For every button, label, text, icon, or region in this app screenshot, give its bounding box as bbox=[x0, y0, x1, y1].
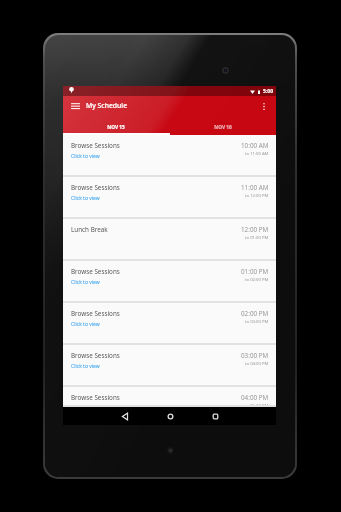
staticText: Lunch Break bbox=[71, 225, 108, 234]
button[interactable]: NOV 15 bbox=[63, 119, 169, 135]
button[interactable]: Browse Sessions bbox=[63, 135, 276, 177]
staticText: 10:00 AM bbox=[241, 141, 269, 150]
staticText: My Schedule bbox=[86, 101, 128, 110]
button[interactable]: Home bbox=[161, 407, 179, 425]
button[interactable]: More options bbox=[257, 99, 271, 113]
staticText: 02:00 PM bbox=[241, 309, 269, 318]
staticText: Click to view bbox=[71, 321, 100, 328]
staticText: Browse Sessions bbox=[71, 393, 120, 402]
staticText: to 01:00 PM bbox=[245, 235, 269, 241]
staticText: Click to view bbox=[71, 153, 100, 160]
staticText: Browse Sessions bbox=[71, 267, 120, 276]
button[interactable]: Browse Sessions bbox=[63, 261, 276, 303]
button[interactable]: Browse Sessions bbox=[63, 303, 276, 345]
staticText: to 05:00 PM bbox=[245, 403, 269, 407]
staticText: 01:00 PM bbox=[241, 267, 269, 276]
staticText: 12:00 PM bbox=[241, 225, 269, 234]
button[interactable]: Open navigation drawer bbox=[68, 99, 82, 113]
staticText: to 11:00 AM bbox=[245, 151, 269, 157]
staticText: NOV 15 bbox=[107, 124, 125, 131]
button[interactable]: Recent apps bbox=[206, 407, 224, 425]
staticText: 04:00 PM bbox=[241, 393, 269, 402]
button[interactable]: Browse Sessions bbox=[63, 177, 276, 219]
staticText: to 12:00 PM bbox=[245, 193, 269, 199]
staticText: Browse Sessions bbox=[71, 141, 120, 150]
staticText: Browse Sessions bbox=[71, 183, 120, 192]
button[interactable]: Browse Sessions bbox=[63, 345, 276, 387]
staticText: 11:00 AM bbox=[241, 183, 269, 192]
staticText: Click to view bbox=[71, 279, 100, 286]
staticText: Click to view bbox=[71, 363, 100, 370]
staticText: Browse Sessions bbox=[71, 309, 120, 318]
staticText: 5:00 bbox=[263, 88, 273, 95]
staticText: NOV 16 bbox=[214, 124, 232, 131]
button[interactable]: Browse Sessions bbox=[63, 387, 276, 407]
staticText: Browse Sessions bbox=[71, 351, 120, 360]
staticText: Click to view bbox=[71, 195, 100, 202]
staticText: to 03:00 PM bbox=[245, 319, 269, 325]
button[interactable]: Back bbox=[116, 407, 134, 425]
staticText: 03:00 PM bbox=[241, 351, 269, 360]
staticText: to 04:00 PM bbox=[245, 361, 269, 367]
button[interactable]: Lunch Break bbox=[63, 219, 276, 261]
button[interactable]: NOV 16 bbox=[169, 119, 276, 135]
staticText: to 02:00 PM bbox=[245, 277, 269, 283]
